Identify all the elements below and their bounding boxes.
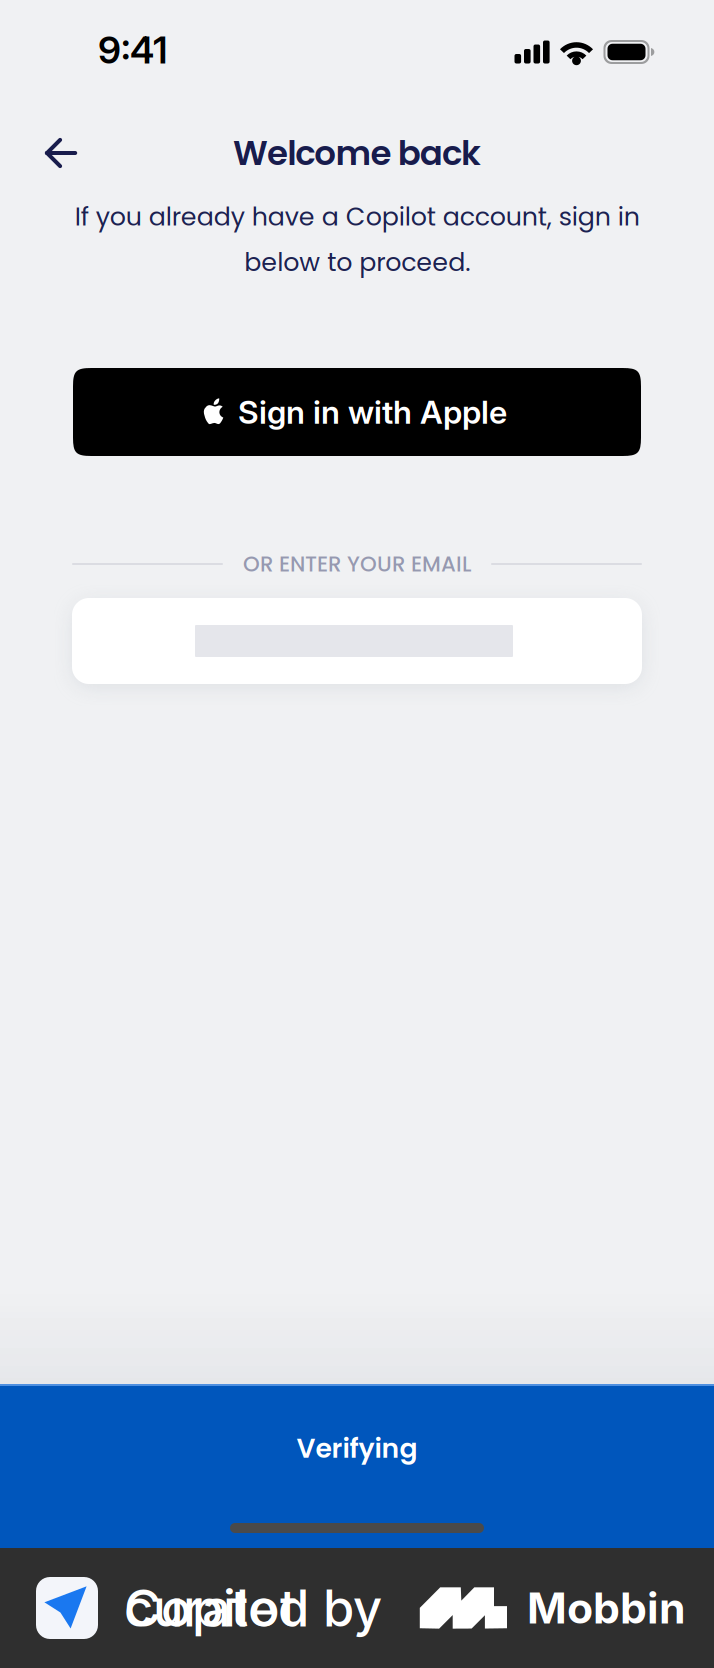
staticText: OR ENTER YOUR EMAIL <box>243 549 471 579</box>
staticText: Mobbin <box>527 1582 686 1634</box>
staticText: Welcome back <box>233 129 481 177</box>
button[interactable]: Sign in with Apple <box>73 368 641 456</box>
staticText: curated by <box>124 1577 382 1639</box>
staticText: 9:41 <box>98 27 168 73</box>
staticText: Sign in with Apple <box>238 393 507 431</box>
staticText: Copilot <box>124 1577 297 1639</box>
staticText: Verifying <box>296 1430 417 1467</box>
button[interactable]: Back <box>30 122 92 184</box>
staticText: If you already have a Copilot account, s… <box>74 199 639 280</box>
